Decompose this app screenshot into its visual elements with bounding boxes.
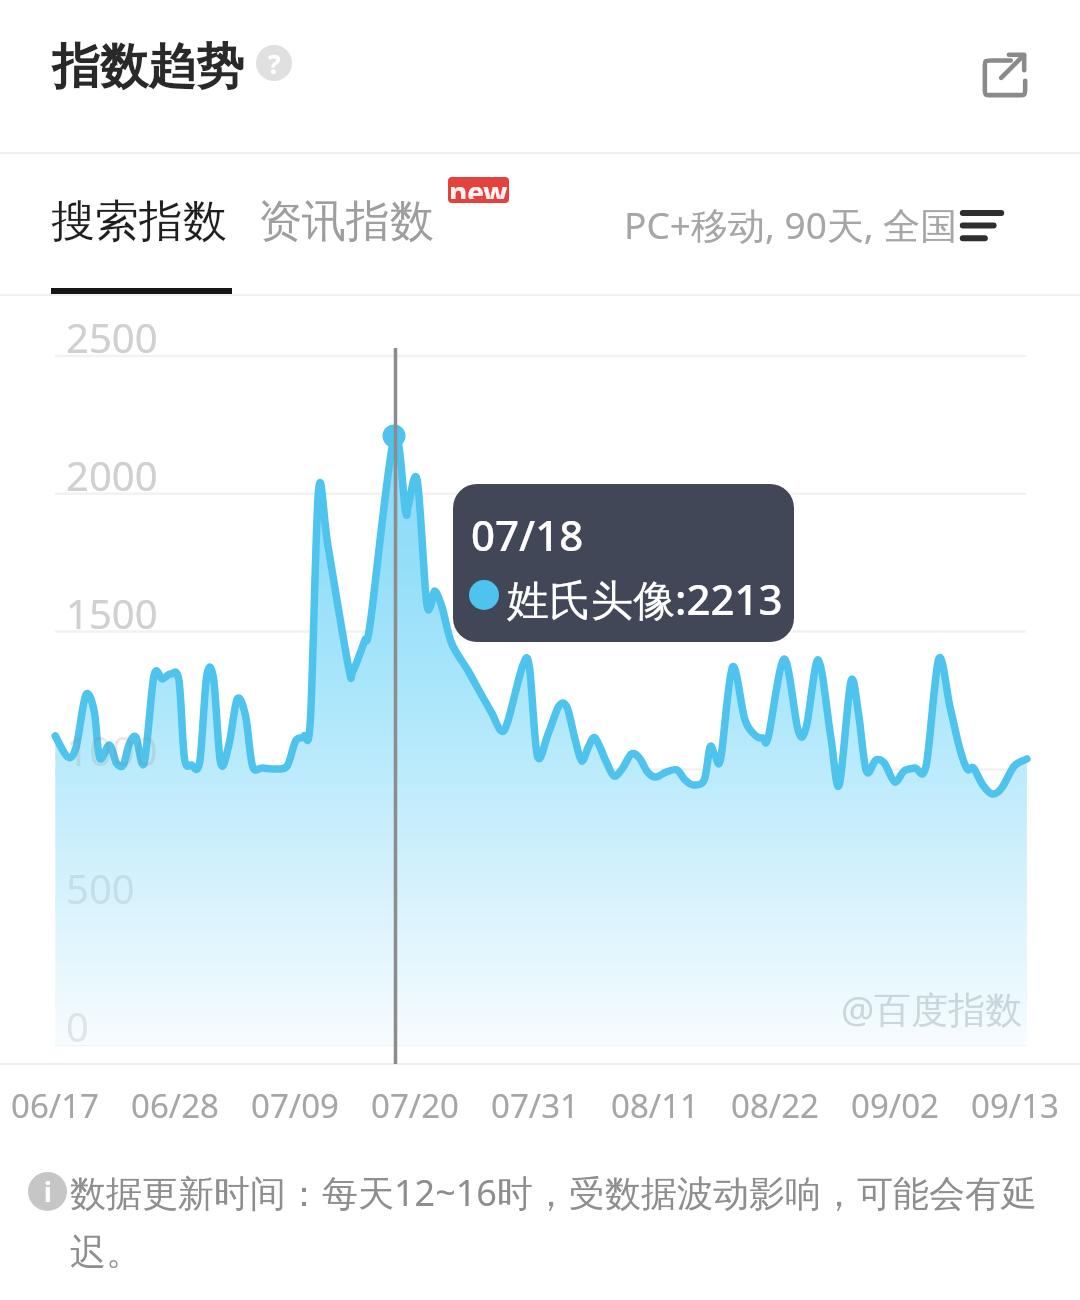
button[interactable]: 指数趋势 [52,37,244,97]
staticText: 07/31 [475,1083,595,1128]
button[interactable]: 帮助 [256,45,292,81]
button[interactable]: 搜索指数 [51,194,227,249]
staticText: 08/22 [715,1083,835,1128]
staticText: i [44,1174,52,1209]
staticText: 07/20 [355,1083,475,1128]
staticText: new [449,177,508,199]
staticText: PC+移动, 90天, 全国 [624,199,958,250]
staticText: 2000 [66,448,158,502]
button[interactable]: 在新窗口打开 [955,24,1055,124]
staticText: 07/18 [471,506,584,563]
button[interactable]: 资讯指数 [258,194,434,249]
staticText: 1000 [66,723,158,777]
staticText: @百度指数 [841,983,1023,1034]
staticText: 06/28 [115,1083,235,1128]
staticText: 08/11 [595,1083,715,1128]
staticText: 2500 [66,310,158,364]
staticText: 07/09 [235,1083,355,1128]
staticText: 1500 [66,586,158,640]
staticText: 06/17 [0,1083,115,1128]
staticText: 0 [66,999,89,1053]
staticText: 500 [66,861,135,915]
staticText: 数据更新时间：每天12~16时，受数据波动影响，可能会有延迟。 [70,1168,1045,1275]
staticText: ? [268,46,281,81]
button[interactable]: PC+移动, 90天, 全国 [624,199,1002,250]
staticText: 09/02 [835,1083,955,1128]
staticText: 姓氏头像:2213 [507,570,783,627]
staticText: 09/13 [955,1083,1075,1128]
